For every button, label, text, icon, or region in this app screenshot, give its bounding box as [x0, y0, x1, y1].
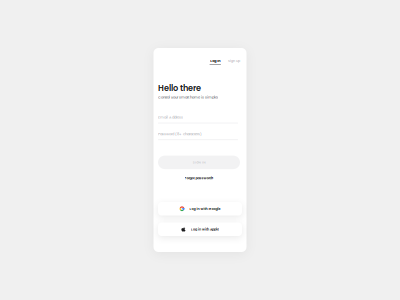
button[interactable]: SIGN IN: [158, 156, 240, 169]
button[interactable]: Sign Up: [228, 59, 240, 65]
button[interactable]: Log in with Google: [158, 202, 242, 215]
staticText: Log in with Apple: [191, 227, 219, 232]
staticText: Log in with Google: [189, 206, 220, 211]
button[interactable]: Log in with Apple: [158, 222, 242, 236]
staticText: Password (8+ characters): [158, 131, 202, 136]
staticText: Sign Up: [228, 58, 240, 63]
button[interactable]: Forgot password?: [158, 176, 240, 181]
staticText: Control your smart home is simple!: [158, 95, 218, 100]
staticText: Hello there: [158, 82, 201, 94]
button[interactable]: Log In: [209, 59, 221, 65]
staticText: SIGN IN: [193, 160, 205, 165]
staticText: Log In: [210, 58, 220, 63]
staticText: Forgot password?: [184, 176, 213, 180]
staticText: Email Address: [158, 115, 183, 120]
